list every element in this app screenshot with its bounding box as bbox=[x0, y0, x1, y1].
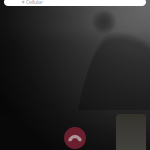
staticText: Cellular bbox=[26, 0, 43, 6]
button[interactable]: End call bbox=[64, 127, 86, 149]
